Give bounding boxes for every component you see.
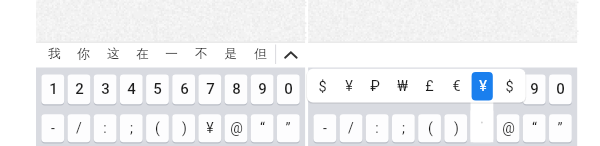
- staticText: 但: [254, 46, 267, 62]
- staticText: ”: [285, 120, 291, 136]
- staticText: /: [348, 120, 354, 136]
- button[interactable]: 5: [135, 76, 179, 102]
- button[interactable]: /: [57, 115, 101, 141]
- button[interactable]: 4: [109, 76, 153, 102]
- staticText: 0: [284, 80, 293, 98]
- button[interactable]: 但: [238, 41, 282, 67]
- button[interactable]: 8: [214, 76, 258, 102]
- staticText: $: [318, 78, 327, 95]
- button[interactable]: 6: [162, 76, 206, 102]
- button[interactable]: @: [486, 115, 530, 141]
- button[interactable]: ): [162, 115, 206, 141]
- button[interactable]: ₽: [353, 73, 397, 99]
- staticText: ₩: [397, 78, 408, 95]
- staticText: @: [230, 120, 243, 136]
- staticText: ₽: [370, 78, 380, 95]
- button[interactable]: 这: [91, 41, 135, 67]
- button[interactable]: ₩: [380, 73, 424, 99]
- button[interactable]: -: [31, 115, 75, 141]
- button[interactable]: €: [434, 73, 478, 99]
- staticText: ;: [402, 120, 405, 136]
- button[interactable]: 你: [61, 41, 105, 67]
- staticText: 9: [530, 80, 539, 98]
- staticText: £: [425, 78, 434, 95]
- button[interactable]: (: [408, 115, 452, 141]
- button[interactable]: ¥: [461, 73, 505, 99]
- button[interactable]: $: [487, 73, 531, 99]
- staticText: 不: [195, 46, 208, 62]
- staticText: 你: [77, 46, 90, 62]
- staticText: 是: [224, 46, 237, 62]
- staticText: ): [182, 120, 187, 136]
- button[interactable]: $: [300, 73, 344, 99]
- button[interactable]: “: [512, 115, 556, 141]
- staticText: ;: [130, 120, 133, 136]
- staticText: 4: [127, 80, 136, 98]
- button[interactable]: ¥: [188, 115, 232, 141]
- button[interactable]: 9: [240, 76, 284, 102]
- staticText: “: [532, 120, 537, 136]
- button[interactable]: 0: [538, 76, 582, 102]
- button[interactable]: 2: [57, 76, 101, 102]
- staticText: (: [155, 120, 160, 136]
- button[interactable]: (: [135, 115, 179, 141]
- staticText: 在: [136, 46, 149, 62]
- button[interactable]: 0: [266, 76, 310, 102]
- button[interactable]: ;: [381, 115, 425, 141]
- staticText: ¥: [345, 78, 353, 95]
- staticText: 9: [258, 80, 267, 98]
- staticText: (: [428, 120, 433, 136]
- button[interactable]: ¥: [327, 73, 371, 99]
- staticText: /: [76, 120, 82, 136]
- button[interactable]: 9: [512, 76, 556, 102]
- button[interactable]: :: [355, 115, 399, 141]
- staticText: :: [375, 120, 379, 136]
- button[interactable]: 7: [188, 76, 232, 102]
- staticText: $: [505, 78, 514, 95]
- staticText: ”: [557, 120, 563, 136]
- button[interactable]: ): [434, 115, 478, 141]
- staticText: :: [103, 120, 107, 136]
- staticText: 0: [556, 80, 565, 98]
- button[interactable]: :: [83, 115, 127, 141]
- button[interactable]: 我: [32, 41, 76, 67]
- button[interactable]: “: [240, 115, 284, 141]
- staticText: ): [454, 120, 459, 136]
- button[interactable]: @: [214, 115, 258, 141]
- staticText: 7: [206, 80, 215, 98]
- button[interactable]: -: [303, 115, 347, 141]
- staticText: 5: [153, 80, 162, 98]
- button[interactable]: 3: [83, 76, 127, 102]
- staticText: ¥: [479, 78, 487, 95]
- staticText: 一: [165, 46, 178, 62]
- button[interactable]: /: [329, 115, 373, 141]
- button[interactable]: 一: [149, 41, 193, 67]
- staticText: 我: [48, 46, 61, 62]
- button[interactable]: ”: [266, 115, 310, 141]
- other: Chinese symbol keyboard screenshots: [0, 0, 600, 146]
- button[interactable]: 是: [208, 41, 252, 67]
- staticText: 2: [75, 80, 84, 98]
- staticText: 3: [101, 80, 110, 98]
- staticText: ¥: [206, 120, 214, 136]
- staticText: 1: [49, 80, 58, 98]
- button[interactable]: 1: [31, 76, 75, 102]
- staticText: @: [502, 120, 515, 136]
- button[interactable]: ”: [538, 115, 582, 141]
- button[interactable]: ;: [109, 115, 153, 141]
- staticText: -: [323, 120, 327, 136]
- button[interactable]: 不: [179, 41, 223, 67]
- button[interactable]: 在: [120, 41, 164, 67]
- staticText: €: [452, 78, 461, 95]
- staticText: “: [260, 120, 265, 136]
- button[interactable]: £: [407, 73, 451, 99]
- staticText: -: [51, 120, 55, 136]
- staticText: 这: [107, 46, 120, 62]
- staticText: 6: [180, 80, 189, 98]
- staticText: 8: [232, 80, 241, 98]
